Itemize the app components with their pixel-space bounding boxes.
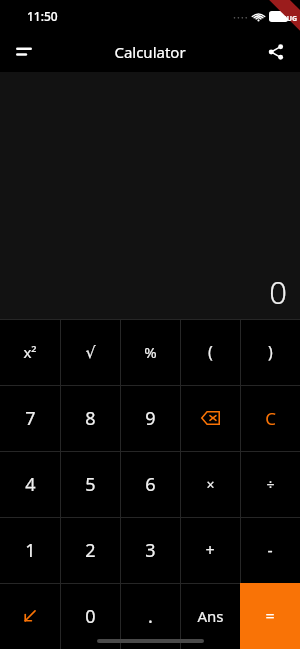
button[interactable]: % (120, 319, 180, 385)
button[interactable]: 0 (60, 583, 120, 649)
button[interactable]: ) (240, 319, 300, 385)
button[interactable]: √ (60, 319, 120, 385)
button[interactable]: 1 (0, 517, 60, 583)
button[interactable]: + (180, 517, 240, 583)
button[interactable]: = (240, 583, 300, 649)
button[interactable]: 4 (0, 451, 60, 517)
button[interactable]: C (240, 385, 300, 451)
staticText: 9 (145, 406, 156, 431)
staticText: % (144, 342, 157, 362)
staticText: Calculator (114, 42, 186, 62)
staticText: - (267, 539, 273, 561)
button[interactable]: 8 (60, 385, 120, 451)
button[interactable]: ÷ (240, 451, 300, 517)
staticText: 1 (25, 538, 36, 563)
staticText: 3 (145, 538, 156, 563)
staticText: 7 (25, 406, 36, 431)
staticText: × (206, 475, 215, 494)
button[interactable]: 7 (0, 385, 60, 451)
button[interactable]: Menu (6, 34, 42, 70)
button[interactable]: ( (180, 319, 240, 385)
staticText: √ (85, 343, 96, 362)
staticText: 5 (85, 472, 96, 497)
staticText: 0 (269, 271, 287, 313)
staticText: C (265, 407, 276, 430)
button[interactable]: 5 (60, 451, 120, 517)
staticText: ÷ (266, 475, 275, 494)
button[interactable]: × (180, 451, 240, 517)
button[interactable]: 9 (120, 385, 180, 451)
staticText: 11:50 (27, 8, 58, 24)
button[interactable]: Ans (180, 583, 240, 649)
staticText: 0 (85, 604, 96, 629)
button[interactable]: x² (0, 319, 60, 385)
button[interactable]: Backspace (180, 385, 240, 451)
staticText: + (205, 539, 215, 561)
button[interactable]: Share (258, 34, 294, 70)
button[interactable]: 3 (120, 517, 180, 583)
staticText: x² (23, 342, 37, 362)
staticText: Ans (197, 606, 224, 626)
staticText: 8 (85, 406, 96, 431)
button[interactable]: - (240, 517, 300, 583)
button[interactable]: 2 (60, 517, 120, 583)
staticText: 2 (85, 538, 96, 563)
staticText: ( (208, 341, 213, 363)
button[interactable]: 6 (120, 451, 180, 517)
staticText: DEBUG (273, 14, 298, 24)
button[interactable]: . (120, 583, 180, 649)
staticText: ) (268, 341, 273, 363)
button[interactable]: Insert answer (0, 583, 60, 649)
staticText: . (148, 604, 153, 629)
staticText: 6 (145, 472, 156, 497)
staticText: 4 (25, 472, 36, 497)
staticText: = (265, 605, 275, 627)
